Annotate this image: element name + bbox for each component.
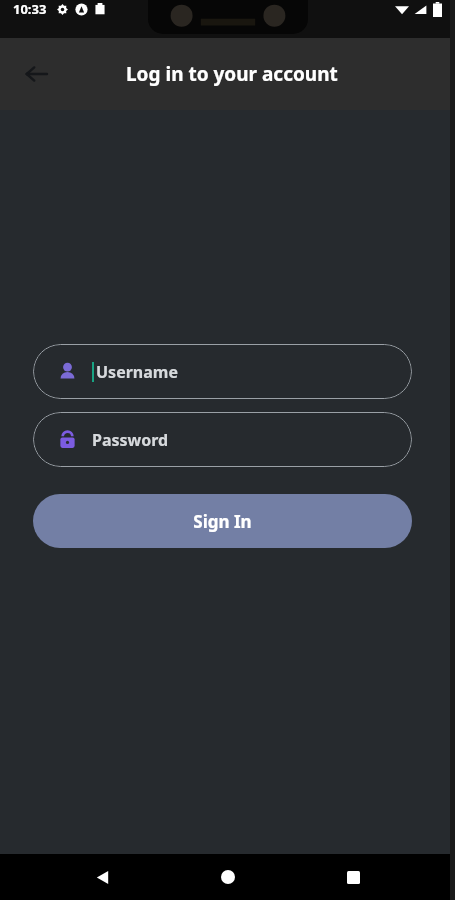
staticText: 10:33 xyxy=(13,0,47,18)
staticText: Username xyxy=(96,361,178,383)
button[interactable]: Home xyxy=(204,854,252,900)
button[interactable]: Username xyxy=(33,344,412,399)
button[interactable]: Password xyxy=(33,412,412,467)
staticText: Password xyxy=(92,429,169,451)
staticText: Log in to your account xyxy=(126,61,338,87)
button[interactable]: Sign In xyxy=(33,494,412,548)
button[interactable]: Recents xyxy=(329,854,377,900)
staticText: Sign In xyxy=(193,510,252,533)
button[interactable]: Back xyxy=(78,854,126,900)
button[interactable]: Back xyxy=(12,50,60,98)
